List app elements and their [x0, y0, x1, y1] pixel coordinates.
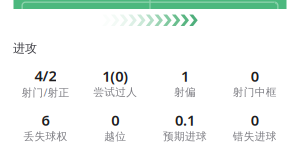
staticText: 0: [251, 110, 259, 130]
staticText: 1: [181, 66, 189, 86]
staticText: 射偏: [174, 86, 196, 99]
staticText: 1(0): [102, 66, 128, 86]
staticText: 射门中框: [233, 86, 277, 99]
staticText: 尝试过人: [93, 86, 137, 99]
staticText: 6: [41, 110, 49, 130]
staticText: 0.1: [175, 110, 195, 130]
staticText: 射门/射正: [21, 85, 69, 99]
staticText: 进攻: [13, 41, 37, 56]
staticText: 丢失球权: [23, 130, 67, 143]
staticText: 越位: [104, 130, 126, 143]
staticText: 预期进球: [163, 130, 207, 143]
staticText: 0: [111, 110, 119, 130]
staticText: 0: [251, 66, 259, 86]
staticText: 4/2: [34, 66, 56, 85]
staticText: 错失进球: [233, 130, 277, 143]
